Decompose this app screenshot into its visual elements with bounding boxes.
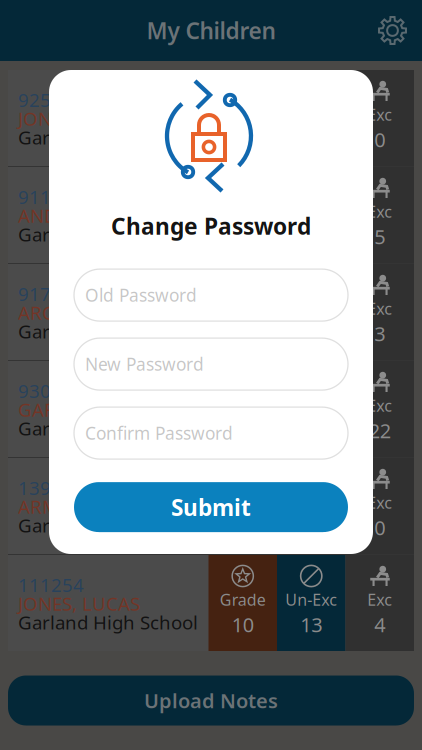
staticText: Grade: [220, 201, 266, 222]
button[interactable]: Submit: [74, 482, 348, 532]
staticText: GARCIA, MARIA: [18, 397, 155, 422]
staticText: JONES, SARAH: [18, 106, 142, 131]
staticText: ANDREWS, KIM: [18, 203, 152, 228]
staticText: 10: [232, 611, 254, 638]
staticText: 111254: [18, 572, 84, 597]
button[interactable]: 925800: [8, 70, 414, 166]
button[interactable]: 139260: [8, 458, 414, 554]
staticText: Exc: [367, 589, 392, 610]
staticText: 139260: [18, 475, 84, 500]
staticText: Un-Exc: [285, 395, 337, 416]
staticText: 0: [306, 514, 317, 541]
staticText: 1: [306, 320, 317, 347]
staticText: 917830: [18, 281, 84, 306]
staticText: 3: [374, 320, 385, 347]
staticText: 925800: [18, 87, 84, 112]
staticText: Upload Notes: [144, 687, 278, 714]
staticText: My Children: [146, 15, 275, 45]
staticText: ARCHER, TYLER: [18, 300, 153, 325]
button[interactable]: New Password: [74, 338, 348, 390]
button[interactable]: 111254: [8, 555, 414, 651]
staticText: Garland High School: [18, 319, 198, 344]
staticText: Grade: [220, 395, 266, 416]
staticText: Exc: [367, 104, 392, 125]
staticText: Exc: [367, 298, 392, 319]
staticText: 0: [374, 514, 385, 541]
button[interactable]: 917830: [8, 264, 414, 360]
button[interactable]: 911090: [8, 167, 414, 263]
staticText: Garland High School: [18, 610, 198, 635]
staticText: 11: [232, 223, 254, 250]
button[interactable]: 930900: [8, 361, 414, 457]
staticText: Submit: [171, 492, 251, 522]
staticText: 6: [306, 223, 317, 250]
staticText: 9: [237, 126, 248, 153]
staticText: Un-Exc: [285, 589, 337, 610]
staticText: Grade: [220, 492, 266, 513]
button[interactable]: Settings: [378, 2, 422, 59]
staticText: JONES, LUCAS: [18, 591, 140, 616]
staticText: Garland High School: [18, 222, 198, 247]
staticText: ARMENTA, JOSE: [18, 494, 154, 519]
staticText: 4: [374, 611, 385, 638]
staticText: Exc: [367, 201, 392, 222]
staticText: Grade: [220, 104, 266, 125]
staticText: Confirm Password: [85, 422, 233, 445]
staticText: Change Password: [111, 211, 311, 241]
button[interactable]: Upload Notes: [8, 675, 414, 725]
staticText: New Password: [85, 353, 204, 376]
staticText: 22: [369, 417, 391, 444]
staticText: Grade: [220, 589, 266, 610]
staticText: 0: [374, 126, 385, 153]
staticText: Exc: [367, 492, 392, 513]
staticText: Garland High School: [18, 416, 198, 441]
button[interactable]: Old Password: [74, 269, 348, 321]
staticText: 12: [232, 320, 254, 347]
staticText: Garland High School: [18, 513, 198, 538]
staticText: Exc: [367, 395, 392, 416]
staticText: 11: [232, 514, 254, 541]
staticText: 930900: [18, 378, 84, 403]
button[interactable]: Confirm Password: [74, 407, 348, 459]
staticText: Un-Exc: [285, 201, 337, 222]
staticText: 5: [374, 223, 385, 250]
staticText: Old Password: [85, 284, 197, 307]
staticText: Garland High School: [18, 125, 198, 150]
staticText: 13: [300, 611, 322, 638]
staticText: 911090: [18, 184, 84, 209]
